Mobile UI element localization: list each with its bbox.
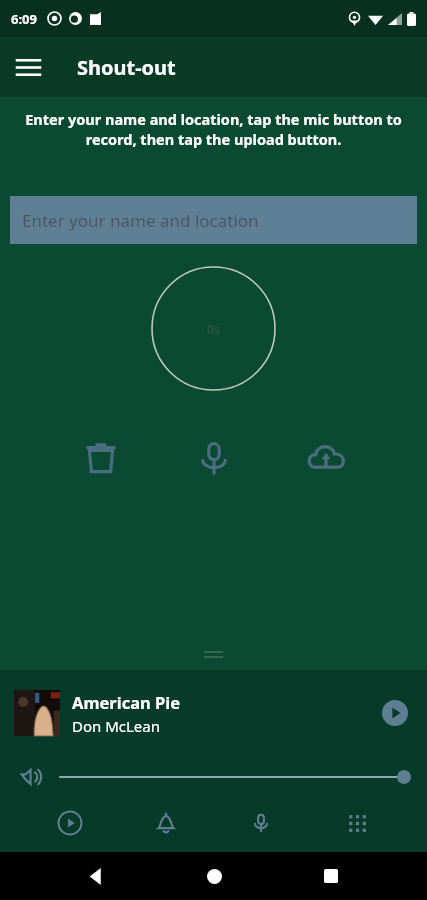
- staticText: Shout-out: [77, 54, 176, 81]
- button[interactable]: Back: [74, 854, 118, 898]
- button[interactable]: Record: [185, 429, 243, 487]
- button[interactable]: Delete recording: [72, 429, 130, 487]
- button[interactable]: Home: [192, 854, 236, 898]
- button[interactable]: Play: [44, 800, 96, 846]
- button[interactable]: Recents: [309, 854, 353, 898]
- staticText: Enter your name and location: [22, 209, 259, 232]
- staticText: 6:09: [11, 10, 37, 28]
- staticText: 0s: [207, 321, 220, 337]
- button[interactable]: Notifications: [140, 800, 192, 846]
- button[interactable]: American Pie: [0, 684, 427, 742]
- button[interactable]: Play: [377, 695, 413, 731]
- staticText: Enter your name and location, tap the mi…: [14, 109, 413, 150]
- button[interactable]: Upload: [297, 429, 355, 487]
- button[interactable]: Menu: [0, 39, 56, 95]
- staticText: American Pie: [72, 691, 181, 713]
- button[interactable]: Apps: [331, 800, 383, 846]
- button[interactable]: Enter your name and location: [10, 196, 417, 244]
- staticText: Don McLean: [72, 716, 161, 736]
- button[interactable]: Microphone: [235, 800, 287, 846]
- button[interactable]: Volume: [16, 762, 46, 792]
